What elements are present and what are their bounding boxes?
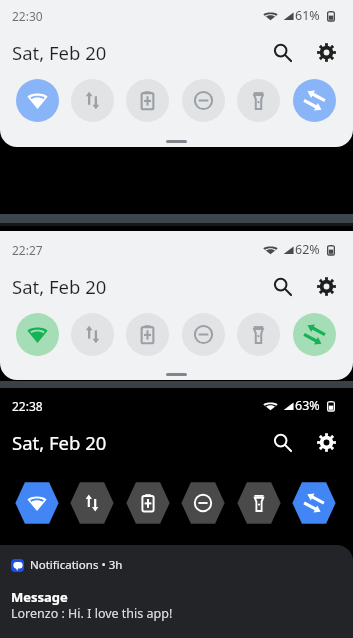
button[interactable]: Settings — [311, 271, 341, 301]
staticText: Sat, Feb 20 — [12, 40, 107, 65]
staticText: Notifications • 3h — [30, 557, 123, 573]
staticText: 22:30 — [12, 8, 43, 24]
staticText: Sat, Feb 20 — [12, 430, 107, 455]
staticText: 22:27 — [12, 242, 43, 258]
button[interactable]: Do Not Disturb — [180, 481, 226, 525]
button[interactable]: Search — [267, 271, 297, 301]
button[interactable]: Flashlight — [237, 313, 280, 356]
button[interactable]: Search — [267, 37, 297, 67]
button[interactable]: Flashlight — [236, 481, 282, 525]
button[interactable]: Mobile data — [71, 79, 114, 122]
button[interactable]: Do Not Disturb — [182, 313, 225, 356]
staticText: 22:38 — [12, 398, 43, 414]
staticText: 61% — [295, 7, 320, 24]
button[interactable]: Wi-Fi — [14, 481, 60, 525]
staticText: Lorenzo : Hi. I love this app! — [11, 605, 173, 622]
button[interactable]: Settings — [311, 427, 341, 457]
button[interactable]: Battery Saver — [126, 79, 169, 122]
button[interactable]: Battery Saver — [126, 313, 169, 356]
button[interactable]: Settings — [311, 37, 341, 67]
staticText: 62% — [295, 241, 320, 258]
staticText: 63% — [295, 397, 320, 414]
button[interactable]: Auto-rotate — [293, 79, 336, 122]
button[interactable]: Wi-Fi — [16, 79, 59, 122]
staticText: Message — [11, 588, 68, 606]
button[interactable]: Auto-rotate — [291, 481, 337, 525]
button[interactable]: Flashlight — [237, 79, 280, 122]
button[interactable]: Do Not Disturb — [182, 79, 225, 122]
button[interactable]: Battery Saver — [125, 481, 171, 525]
button[interactable]: Mobile data — [71, 313, 114, 356]
button[interactable]: Wi-Fi — [16, 313, 59, 356]
button[interactable]: Auto-rotate — [293, 313, 336, 356]
staticText: Sat, Feb 20 — [12, 274, 107, 299]
button[interactable]: Mobile data — [69, 481, 115, 525]
button[interactable]: Notifications • 3h — [0, 545, 353, 638]
button[interactable]: Search — [267, 427, 297, 457]
